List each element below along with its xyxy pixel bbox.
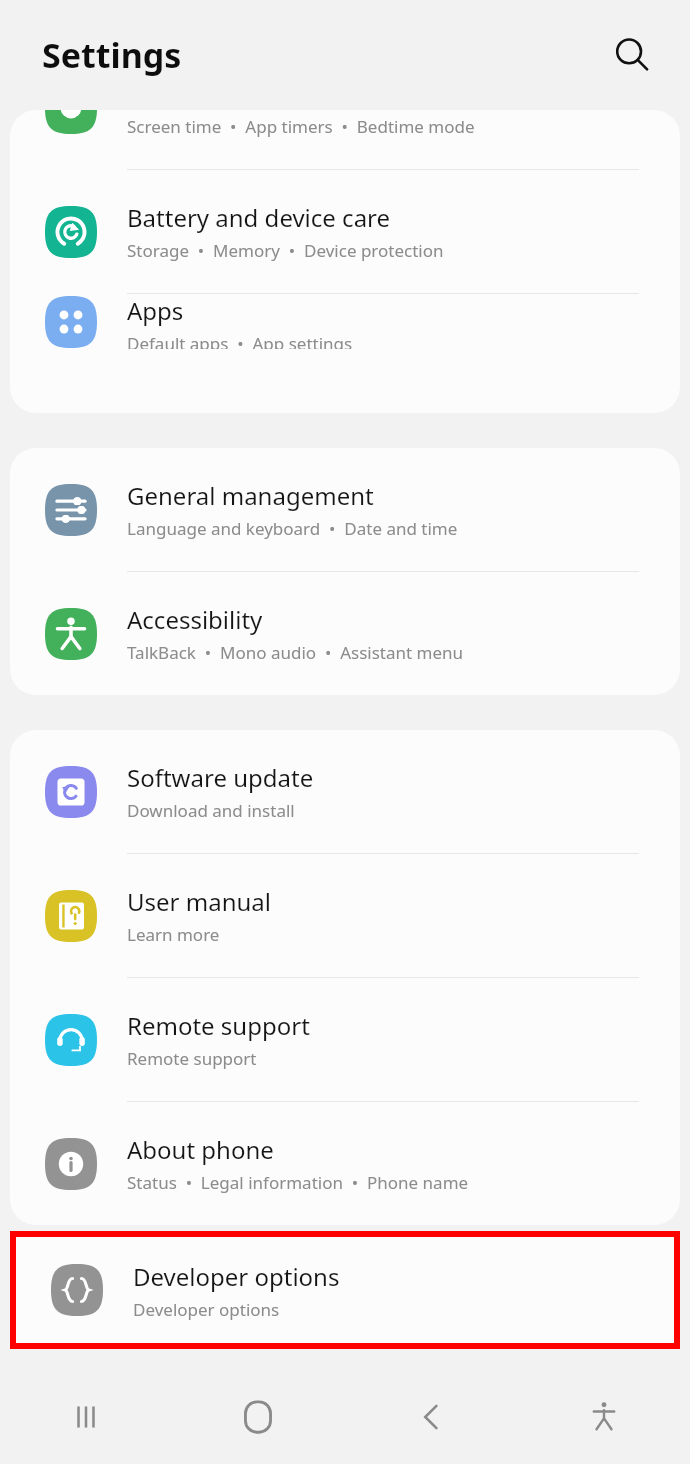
button[interactable]: Search (602, 25, 662, 85)
button[interactable]: User manual (10, 854, 680, 977)
button[interactable]: Software update (10, 730, 680, 853)
staticText: TalkBack • Mono audio • Assistant menu (127, 641, 464, 664)
button[interactable]: About phone (10, 1102, 680, 1225)
staticText: Remote support (127, 1047, 257, 1070)
button[interactable]: Developer options (16, 1237, 674, 1343)
button[interactable]: Recent apps (0, 1370, 172, 1464)
staticText: Software update (127, 761, 314, 794)
staticText: Settings (42, 32, 182, 78)
staticText: Remote support (127, 1009, 310, 1042)
staticText: Accessibility (127, 603, 263, 636)
staticText: Status • Legal information • Phone name (127, 1171, 469, 1194)
staticText: User manual (127, 885, 271, 918)
staticText: Apps (127, 294, 184, 327)
button[interactable]: Battery and device care (10, 170, 680, 293)
staticText: General management (127, 479, 374, 512)
staticText: Developer options (133, 1260, 340, 1293)
staticText: Developer options (133, 1298, 280, 1321)
button[interactable]: General management (10, 448, 680, 571)
staticText: About phone (127, 1133, 274, 1166)
staticText: Battery and device care (127, 201, 391, 234)
button[interactable]: Remote support (10, 978, 680, 1101)
button[interactable]: Back (344, 1370, 517, 1464)
button[interactable]: Developer options (16, 1237, 674, 1343)
button[interactable]: Home (172, 1370, 344, 1464)
staticText: Screen time • App timers • Bedtime mode (127, 115, 475, 138)
staticText: Default apps • App settings (127, 332, 353, 349)
staticText: Language and keyboard • Date and time (127, 517, 458, 540)
staticText: Storage • Memory • Device protection (127, 239, 444, 262)
button[interactable]: Accessibility (517, 1370, 690, 1464)
button[interactable]: Accessibility (10, 572, 680, 695)
button[interactable]: Apps (10, 294, 680, 349)
staticText: Learn more (127, 923, 220, 946)
staticText: Download and install (127, 799, 295, 822)
button[interactable]: Digital Wellbeing and parental controls (10, 110, 680, 169)
